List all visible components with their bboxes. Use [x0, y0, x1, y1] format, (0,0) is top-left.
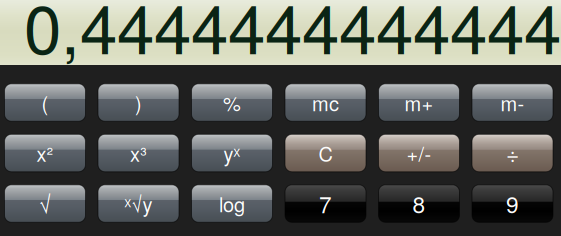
staticText: %: [223, 88, 241, 117]
button[interactable]: +/-: [378, 134, 459, 172]
staticText: √: [39, 187, 51, 220]
staticText: 8: [412, 187, 425, 220]
button[interactable]: √: [4, 185, 85, 222]
button[interactable]: ): [98, 84, 179, 121]
button[interactable]: C: [285, 134, 366, 172]
button[interactable]: ˣ√y: [98, 185, 179, 222]
staticText: log: [219, 189, 245, 218]
button[interactable]: x³: [98, 134, 179, 172]
button[interactable]: 9: [472, 185, 553, 222]
staticText: (: [41, 88, 48, 117]
staticText: x³: [130, 139, 147, 167]
staticText: m+: [404, 88, 433, 117]
button[interactable]: ÷: [472, 134, 553, 172]
staticText: ˣ√y: [124, 189, 152, 218]
staticText: yˣ: [223, 139, 240, 167]
staticText: ÷: [506, 137, 519, 169]
staticText: ): [135, 88, 142, 117]
button[interactable]: mc: [285, 84, 366, 121]
staticText: mc: [312, 88, 339, 117]
staticText: m-: [500, 88, 524, 117]
button[interactable]: 7: [285, 185, 366, 222]
button[interactable]: yˣ: [191, 134, 272, 172]
staticText: 0,4444444444444: [24, 0, 561, 73]
button[interactable]: m-: [472, 84, 553, 121]
staticText: 9: [506, 187, 519, 220]
staticText: +/-: [406, 139, 431, 167]
button[interactable]: (: [4, 84, 85, 121]
button[interactable]: %: [191, 84, 272, 121]
staticText: C: [318, 139, 332, 167]
button[interactable]: x²: [4, 134, 85, 172]
staticText: 7: [319, 187, 332, 220]
button[interactable]: log: [191, 185, 272, 222]
button[interactable]: 8: [378, 185, 459, 222]
staticText: x²: [36, 139, 53, 167]
button[interactable]: m+: [378, 84, 459, 121]
